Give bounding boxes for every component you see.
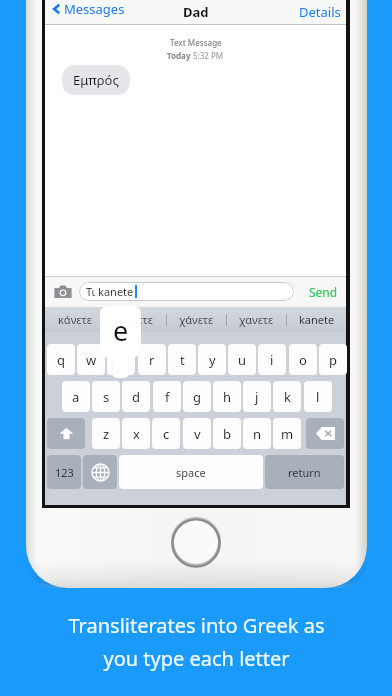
button[interactable]: i <box>258 344 286 375</box>
staticText: l <box>316 388 320 406</box>
button[interactable]: Messages <box>50 0 346 18</box>
button[interactable]: u <box>228 344 256 375</box>
staticText: j <box>255 388 259 406</box>
button[interactable]: kanete <box>287 307 346 332</box>
staticText: f <box>165 388 170 406</box>
staticText: q <box>57 351 65 369</box>
staticText: y <box>209 351 216 369</box>
button[interactable]: y <box>198 344 226 375</box>
staticText: Dad <box>183 3 209 21</box>
button[interactable]: c <box>152 418 180 449</box>
staticText: κανετε <box>119 312 153 327</box>
button[interactable]: χάνετε <box>167 307 226 332</box>
staticText: r <box>149 351 155 369</box>
staticText: 123 <box>55 465 74 480</box>
button[interactable]: a <box>62 381 90 412</box>
button[interactable]: r <box>138 344 166 375</box>
staticText: s <box>103 388 110 406</box>
staticText: i <box>270 351 274 369</box>
button[interactable]: p <box>319 344 347 375</box>
staticText: v <box>194 425 201 443</box>
button[interactable]: Εμπρός <box>73 71 119 89</box>
staticText: u <box>238 351 247 369</box>
staticText: m <box>281 425 294 443</box>
staticText: χάνετε <box>179 312 214 327</box>
button[interactable]: Send <box>309 284 338 300</box>
button[interactable]: j <box>243 381 271 412</box>
button[interactable]: space <box>119 455 263 489</box>
button[interactable]: e <box>107 344 135 375</box>
staticText: Messages <box>64 0 125 18</box>
staticText: c <box>163 425 170 443</box>
staticText: z <box>103 425 110 443</box>
button[interactable]: d <box>122 381 150 412</box>
button[interactable]: χανετε <box>227 307 286 332</box>
button[interactable]: κανετε <box>106 307 166 332</box>
button[interactable]: h <box>213 381 241 412</box>
button[interactable]: z <box>92 418 120 449</box>
staticText: b <box>223 425 231 443</box>
button[interactable]: Change keyboard <box>83 455 117 489</box>
button[interactable]: return <box>265 455 344 489</box>
staticText: space <box>176 465 206 480</box>
staticText: return <box>288 465 321 480</box>
staticText: Today <box>167 50 193 61</box>
staticText: κάνετε <box>58 312 92 327</box>
button[interactable]: Τι kanete <box>79 282 294 301</box>
button[interactable]: Details <box>299 3 341 21</box>
staticText: 5:32 PM <box>193 50 224 61</box>
button[interactable]: k <box>273 381 301 412</box>
staticText: Transliterates into Greek as <box>68 612 325 639</box>
staticText: w <box>86 351 97 369</box>
staticText: n <box>253 425 262 443</box>
button[interactable]: s <box>92 381 120 412</box>
button[interactable]: Backspace <box>306 418 344 449</box>
staticText: x <box>133 425 140 443</box>
button[interactable]: 123 <box>47 455 81 489</box>
staticText: t <box>180 351 185 369</box>
staticText: a <box>72 388 80 406</box>
staticText: Εμπρός <box>73 71 119 89</box>
staticText: o <box>299 351 307 369</box>
button[interactable]: Shift <box>47 418 85 449</box>
staticText: d <box>132 388 140 406</box>
button[interactable]: v <box>183 418 211 449</box>
staticText: e <box>113 312 129 349</box>
staticText: χανετε <box>239 312 274 327</box>
staticText: kanete <box>299 312 335 327</box>
button[interactable]: b <box>213 418 241 449</box>
button[interactable]: x <box>122 418 150 449</box>
button[interactable]: Camera <box>53 282 73 302</box>
staticText: Τι kanete <box>86 284 134 299</box>
staticText: Text Message <box>170 37 222 48</box>
staticText: p <box>329 351 337 369</box>
button[interactable]: o <box>289 344 317 375</box>
button[interactable]: t <box>168 344 196 375</box>
staticText: h <box>223 388 232 406</box>
button[interactable]: m <box>273 418 301 449</box>
button[interactable]: n <box>243 418 271 449</box>
button[interactable]: f <box>153 381 181 412</box>
button[interactable]: w <box>77 344 105 375</box>
button[interactable]: q <box>47 344 75 375</box>
staticText: you type each letter <box>103 645 290 672</box>
button[interactable]: κάνετε <box>45 307 105 332</box>
staticText: k <box>284 388 291 406</box>
button[interactable]: g <box>183 381 211 412</box>
staticText: g <box>193 388 201 406</box>
button[interactable]: l <box>304 381 332 412</box>
